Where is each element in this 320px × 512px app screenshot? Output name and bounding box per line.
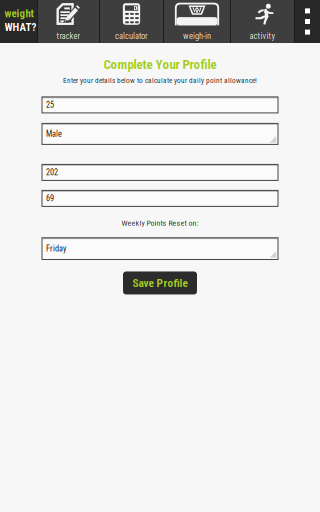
button[interactable]: activity <box>231 0 294 43</box>
staticText: Save Profile <box>132 276 187 290</box>
staticText: calculator <box>115 31 148 41</box>
button[interactable]: More options <box>295 0 320 43</box>
staticText: Enter your details below to calculate yo… <box>63 76 257 85</box>
button[interactable]: Friday <box>42 238 278 259</box>
staticText: 25 <box>46 100 54 110</box>
staticText: 202 <box>46 168 58 177</box>
staticText: 69 <box>46 194 54 203</box>
button[interactable]: Save Profile <box>123 271 197 294</box>
button[interactable]: weigh-in <box>164 0 230 43</box>
staticText: WHAT? <box>4 21 36 34</box>
button[interactable]: tracker <box>38 0 99 43</box>
staticText: weigh-in <box>183 31 211 41</box>
staticText: Friday <box>46 244 66 253</box>
button[interactable]: calculator <box>100 0 163 43</box>
button[interactable]: 69 <box>42 190 278 206</box>
staticText: Male <box>46 129 62 139</box>
staticText: tracker <box>56 31 80 41</box>
staticText: Weekly Points Reset on: <box>121 218 198 228</box>
staticText: weight <box>4 7 33 20</box>
button[interactable]: Male <box>42 123 278 144</box>
staticText: Complete Your Profile <box>103 57 216 72</box>
button[interactable]: 202 <box>42 164 278 180</box>
button[interactable]: weight <box>0 0 37 43</box>
button[interactable]: 25 <box>42 97 278 113</box>
staticText: activity <box>249 31 275 41</box>
